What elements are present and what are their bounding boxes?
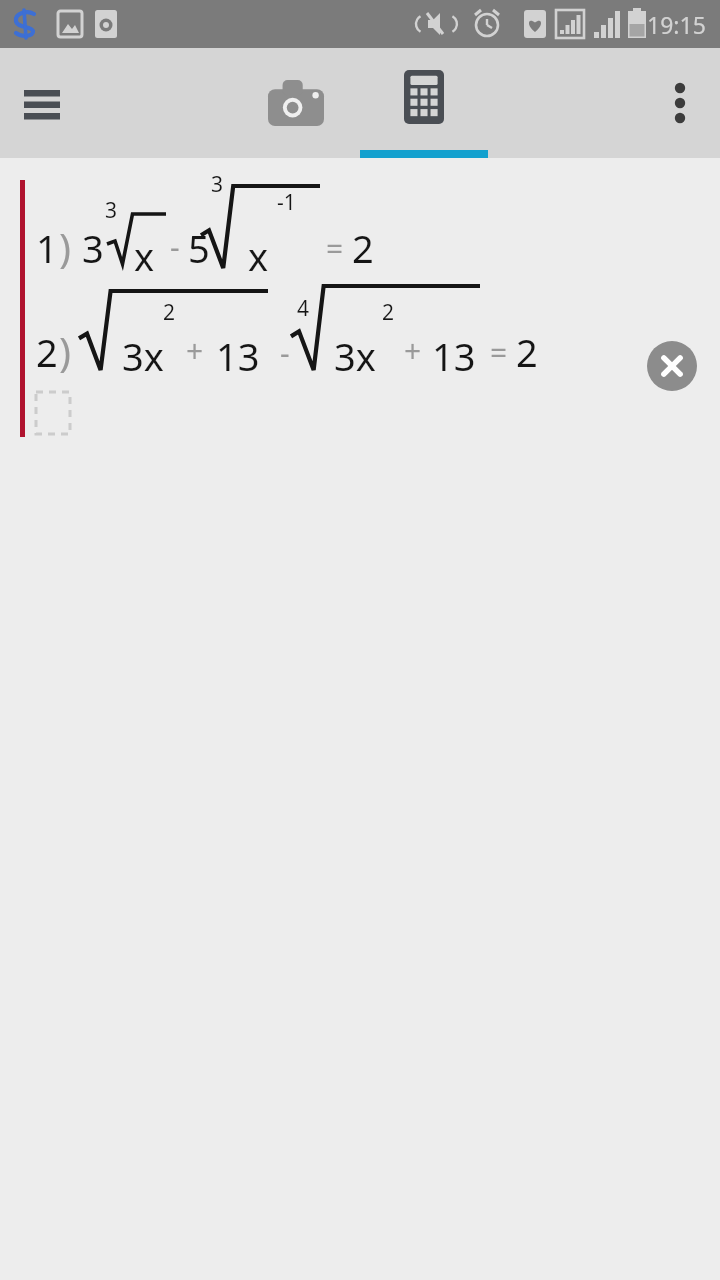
staticText: 2 — [36, 326, 58, 378]
staticText: 13 — [432, 330, 476, 382]
button[interactable]: Calculator — [360, 48, 488, 158]
staticText: + — [404, 330, 422, 371]
staticText: 19:15 — [647, 9, 706, 40]
staticText: 2 — [516, 326, 538, 378]
staticText: 2 — [382, 298, 395, 327]
staticText: 3 — [82, 222, 104, 274]
staticText: 1 — [36, 222, 58, 274]
staticText: 2 — [163, 298, 176, 327]
staticText: 3x — [334, 330, 376, 382]
staticText: - — [170, 226, 180, 267]
staticText: 13 — [216, 330, 260, 382]
staticText: + — [186, 330, 204, 371]
staticText: ) — [59, 324, 71, 378]
staticText: - — [280, 332, 290, 373]
staticText: -1 — [277, 188, 296, 217]
button[interactable]: More options — [646, 69, 714, 137]
button[interactable]: Camera — [232, 48, 360, 158]
button[interactable] — [0, 158, 720, 1280]
staticText: 3x — [122, 330, 164, 382]
staticText: 3 — [105, 196, 118, 225]
staticText: = — [490, 332, 508, 373]
button[interactable]: Menu — [8, 69, 76, 137]
button[interactable]: Close — [647, 341, 697, 391]
staticText: x — [248, 230, 269, 282]
staticText: ) — [59, 220, 71, 274]
staticText: 5 — [188, 222, 210, 274]
staticText: 2 — [352, 222, 374, 274]
staticText: 4 — [297, 294, 310, 323]
staticText: = — [326, 228, 344, 269]
staticText: x — [134, 230, 155, 282]
staticText: 3 — [211, 170, 224, 199]
